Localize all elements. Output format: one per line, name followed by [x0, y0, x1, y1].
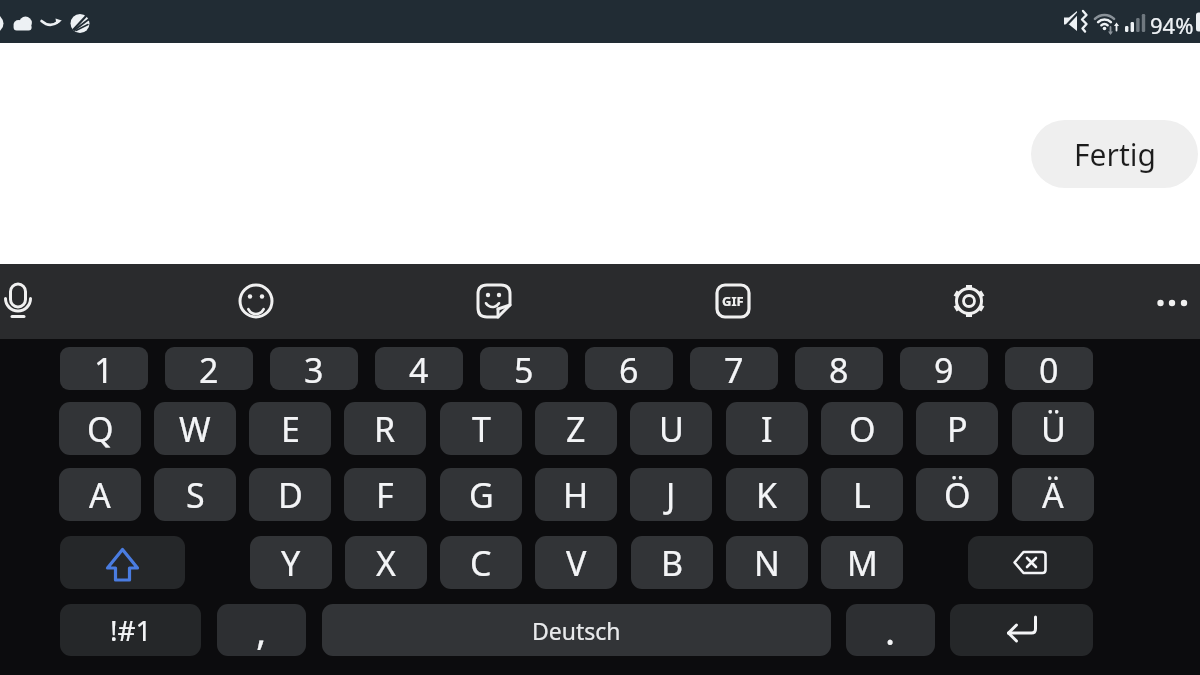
staticText: 9: [934, 347, 954, 390]
button[interactable]: B: [631, 536, 713, 589]
staticText: T: [472, 406, 491, 452]
button[interactable]: J: [630, 468, 712, 521]
staticText: 4: [409, 347, 429, 390]
button[interactable]: Ö: [916, 468, 998, 521]
staticText: Fertig: [1074, 134, 1156, 175]
staticText: GIF: [722, 292, 744, 310]
staticText: F: [376, 472, 394, 518]
button[interactable]: C: [440, 536, 522, 589]
staticText: J: [666, 472, 676, 518]
button[interactable]: X: [345, 536, 427, 589]
staticText: Ü: [1041, 406, 1066, 452]
button[interactable]: 2: [165, 347, 253, 390]
button[interactable]: M: [821, 536, 903, 589]
staticText: 2: [199, 347, 219, 390]
staticText: I: [761, 406, 773, 452]
button[interactable]: [230, 275, 282, 327]
button[interactable]: F: [344, 468, 426, 521]
button[interactable]: 4: [375, 347, 463, 390]
button[interactable]: W: [154, 402, 236, 455]
button[interactable]: 5: [480, 347, 568, 390]
button[interactable]: .: [846, 604, 935, 656]
button[interactable]: P: [916, 402, 998, 455]
button[interactable]: V: [535, 536, 617, 589]
staticText: W: [179, 406, 211, 452]
button[interactable]: S: [154, 468, 236, 521]
staticText: Z: [566, 406, 586, 452]
staticText: 5: [514, 347, 534, 390]
staticText: Ö: [944, 472, 971, 518]
button[interactable]: 3: [270, 347, 358, 390]
button[interactable]: Ü: [1012, 402, 1094, 455]
button[interactable]: ,: [217, 604, 306, 656]
staticText: 7: [724, 347, 744, 390]
button[interactable]: H: [535, 468, 617, 521]
button[interactable]: 0: [1005, 347, 1093, 390]
staticText: A: [89, 472, 111, 518]
button[interactable]: [0, 275, 44, 327]
staticText: 0: [1039, 347, 1059, 390]
staticText: X: [376, 540, 396, 586]
staticText: B: [661, 540, 684, 586]
staticText: Y: [281, 540, 301, 586]
staticText: G: [469, 472, 494, 518]
button[interactable]: Q: [59, 402, 141, 455]
staticText: Ä: [1042, 472, 1064, 518]
button[interactable]: K: [726, 468, 808, 521]
staticText: K: [756, 472, 778, 518]
staticText: P: [947, 406, 968, 452]
button[interactable]: L: [821, 468, 903, 521]
staticText: !#1: [110, 611, 152, 649]
staticText: .: [885, 604, 896, 656]
staticText: E: [281, 406, 300, 452]
button[interactable]: [1146, 275, 1198, 327]
button[interactable]: [950, 604, 1093, 656]
button[interactable]: 7: [690, 347, 778, 390]
button[interactable]: R: [344, 402, 426, 455]
button[interactable]: [707, 275, 759, 327]
button[interactable]: 9: [900, 347, 988, 390]
staticText: Q: [87, 406, 114, 452]
button[interactable]: !#1: [60, 604, 201, 656]
button[interactable]: I: [726, 402, 808, 455]
button[interactable]: O: [821, 402, 903, 455]
button[interactable]: E: [249, 402, 331, 455]
button[interactable]: [943, 275, 995, 327]
button[interactable]: Y: [250, 536, 332, 589]
staticText: N: [754, 540, 780, 586]
staticText: S: [186, 472, 205, 518]
button[interactable]: A: [59, 468, 141, 521]
button[interactable]: N: [726, 536, 808, 589]
button[interactable]: Ä: [1012, 468, 1094, 521]
button[interactable]: 6: [585, 347, 673, 390]
button[interactable]: [60, 536, 185, 589]
button[interactable]: Z: [535, 402, 617, 455]
button[interactable]: Deutsch: [322, 604, 831, 656]
button[interactable]: D: [249, 468, 331, 521]
staticText: H: [563, 472, 589, 518]
staticText: V: [566, 540, 587, 586]
button[interactable]: Fertig: [1031, 120, 1198, 188]
staticText: 8: [829, 347, 849, 390]
staticText: 6: [619, 347, 639, 390]
button[interactable]: G: [440, 468, 522, 521]
staticText: M: [847, 540, 878, 586]
button[interactable]: 1: [60, 347, 148, 390]
staticText: Deutsch: [532, 615, 621, 646]
staticText: 1: [94, 347, 114, 390]
staticText: ,: [256, 604, 267, 656]
button[interactable]: [468, 275, 520, 327]
button[interactable]: [968, 536, 1093, 589]
staticText: L: [853, 472, 871, 518]
staticText: U: [659, 406, 684, 452]
staticText: O: [849, 406, 876, 452]
staticText: 94%: [1150, 10, 1194, 40]
staticText: D: [278, 472, 303, 518]
staticText: C: [470, 540, 492, 586]
button[interactable]: 8: [795, 347, 883, 390]
button[interactable]: U: [630, 402, 712, 455]
button[interactable]: T: [440, 402, 522, 455]
staticText: 3: [304, 347, 324, 390]
staticText: R: [374, 406, 396, 452]
